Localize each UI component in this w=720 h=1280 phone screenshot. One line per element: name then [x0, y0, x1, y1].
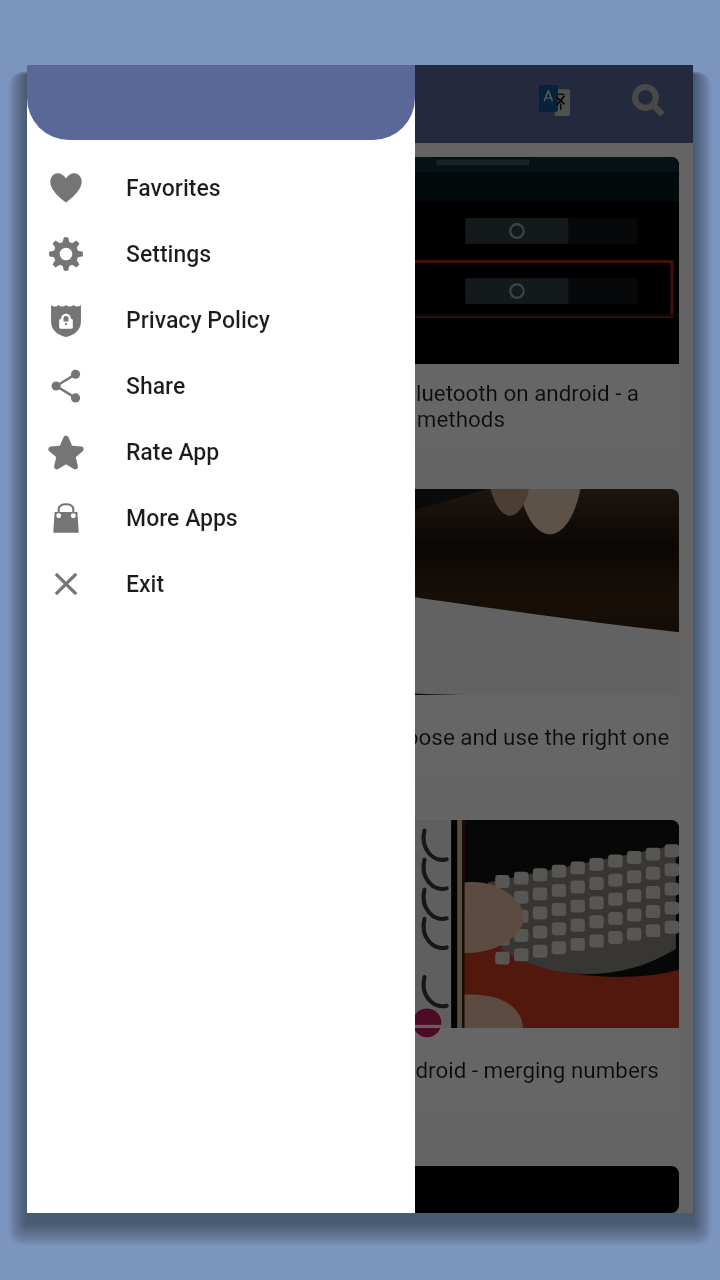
staticText: Favorites [126, 175, 221, 202]
staticText: More Apps [126, 505, 238, 532]
button[interactable]: Conference call on android - merging num… [41, 820, 679, 1111]
button[interactable]: Privacy Policy [27, 287, 415, 353]
button[interactable]: Rate App [27, 419, 415, 485]
button[interactable]: Favorites [27, 155, 415, 221]
staticText: Settings [126, 241, 212, 268]
staticText: Conference call on android - merging num… [200, 1057, 659, 1083]
button[interactable]: Translate [524, 70, 584, 130]
staticText: Rate App [126, 439, 220, 466]
staticText: Privacy Policy [126, 307, 271, 334]
button[interactable]: Settings [27, 221, 415, 287]
button[interactable] [41, 1166, 679, 1213]
staticText: few simple methods [303, 406, 505, 432]
button[interactable]: More Apps [27, 485, 415, 551]
button[interactable]: Exit [27, 551, 415, 617]
button[interactable]: Search [618, 70, 678, 130]
button[interactable]: Share [27, 353, 415, 419]
staticText: Share [126, 373, 186, 400]
button[interactable]: Android browsers - choose and use the ri… [41, 489, 679, 778]
staticText: Exit [126, 571, 165, 598]
button[interactable]: How to turn on bluetooth on android - a [41, 157, 679, 447]
staticText: How to turn on bluetooth on android - a [251, 380, 640, 406]
staticText: Android browsers - choose and use the ri… [189, 724, 670, 750]
